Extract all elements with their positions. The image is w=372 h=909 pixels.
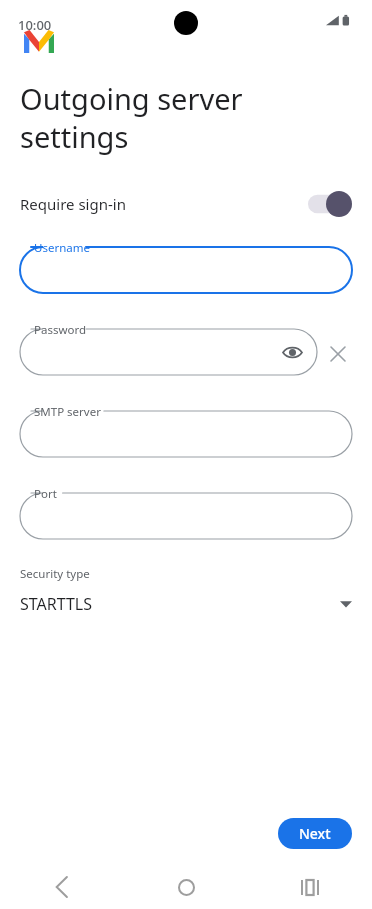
staticText: Next bbox=[299, 824, 331, 843]
staticText: Username bbox=[34, 240, 90, 256]
button[interactable]: Back bbox=[0, 865, 124, 909]
button[interactable]: Require sign-in toggle bbox=[308, 191, 352, 217]
staticText: STARTTLS bbox=[20, 593, 340, 615]
button[interactable]: Next bbox=[278, 818, 352, 849]
staticText: Password bbox=[34, 322, 87, 338]
staticText: 10:00 bbox=[18, 16, 52, 34]
staticText: Outgoing server settings bbox=[20, 79, 352, 156]
button[interactable]: Home bbox=[124, 865, 248, 909]
staticText: SMTP server bbox=[34, 404, 101, 420]
button[interactable]: Password bbox=[20, 321, 317, 375]
button[interactable]: Security type bbox=[20, 566, 352, 615]
button[interactable]: Clear password bbox=[325, 341, 351, 367]
button[interactable]: Require sign-in bbox=[20, 184, 352, 224]
button[interactable]: Username bbox=[20, 239, 352, 293]
button[interactable]: SMTP server bbox=[20, 403, 352, 457]
button[interactable]: Show password bbox=[277, 337, 307, 367]
button[interactable]: Recent apps bbox=[248, 865, 372, 909]
staticText: Security type bbox=[20, 566, 90, 582]
staticText: Require sign-in bbox=[20, 194, 308, 214]
button[interactable]: Port bbox=[20, 485, 352, 539]
staticText: Port bbox=[34, 486, 57, 502]
